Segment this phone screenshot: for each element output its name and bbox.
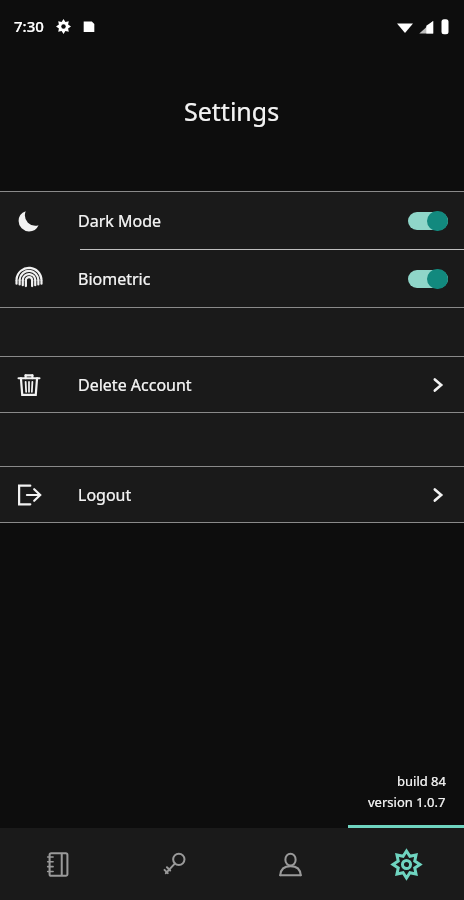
button[interactable]: Profile (232, 828, 348, 900)
button[interactable]: Toggle (408, 211, 448, 231)
button[interactable]: Toggle (408, 269, 448, 289)
button[interactable]: Dark Mode (0, 192, 464, 249)
button[interactable]: Biometric (0, 250, 464, 307)
staticText: Dark Mode (78, 210, 408, 232)
staticText: Delete Account (78, 374, 428, 396)
button[interactable]: Delete Account (0, 357, 464, 412)
button[interactable]: Logout (0, 467, 464, 522)
staticText: build 84 (397, 772, 446, 790)
button[interactable]: Settings (348, 828, 464, 900)
staticText: 7:30 (14, 16, 44, 36)
staticText: version 1.0.7 (368, 793, 446, 811)
button[interactable]: Keys (116, 828, 232, 900)
staticText: Logout (78, 484, 428, 506)
button[interactable]: Journal (0, 828, 116, 900)
staticText: Biometric (78, 268, 408, 290)
staticText: Settings (184, 94, 280, 128)
